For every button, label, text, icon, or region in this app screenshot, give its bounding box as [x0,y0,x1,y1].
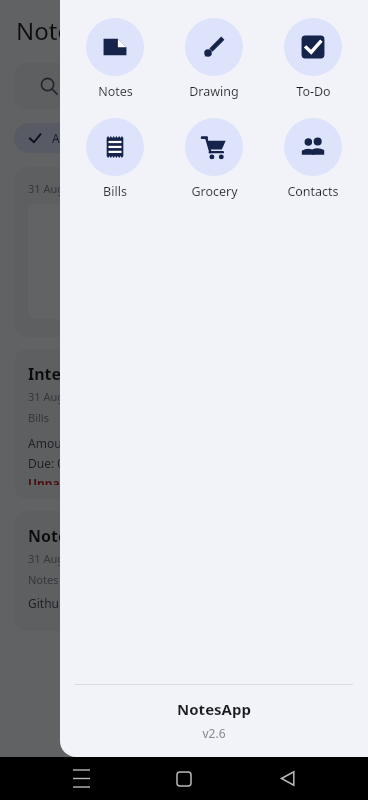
button[interactable]: Contacts [269,114,357,204]
button[interactable]: Recents [59,757,103,800]
staticText: NotesApp [60,699,368,719]
button[interactable]: 31 Aug 2024 [14,167,354,337]
button[interactable]: To-Do [269,14,357,104]
button[interactable]: Notes [71,14,159,104]
other: Bills [86,118,144,176]
other: Contacts [284,118,342,176]
button[interactable]: All [14,123,92,153]
other: Drawing [185,18,243,76]
staticText: All [52,130,66,146]
staticText: 31 Aug 2024 [28,181,93,196]
staticText: Notes [98,83,133,100]
staticText: Due: 05 Sep [28,455,95,471]
staticText: Internet Bill [28,363,125,385]
button[interactable]: Notes [100,123,178,153]
staticText: Unpaid [28,475,71,485]
staticText: v2.6 [60,725,368,741]
staticText: Bills [103,183,127,200]
staticText: Notes [122,130,156,146]
button[interactable]: Grocery [170,114,258,204]
button[interactable] [14,63,354,109]
other: Notes [86,18,144,76]
button[interactable]: Home [162,757,206,800]
button[interactable]: Notes on Compose [14,511,354,631]
button[interactable]: Internet Bill [14,349,354,499]
staticText: Notes on Compose [28,525,178,547]
other: Grocery [185,118,243,176]
staticText: 31 Aug 2024 [28,389,93,404]
button[interactable]: Bills [71,114,159,204]
button[interactable]: Back [265,757,309,800]
staticText: Notes [28,572,59,587]
staticText: Notes [16,14,83,47]
staticText: 31 Aug 2024 [28,551,93,566]
other: To-Do [284,18,342,76]
staticText: Bills [28,410,49,425]
staticText: Contacts [287,183,339,200]
button[interactable]: Drawing [170,14,258,104]
staticText: Drawing [189,83,239,100]
staticText: Amount: 450 [28,435,101,451]
staticText: Grocery [191,183,238,200]
staticText: To-Do [296,83,331,100]
staticText: Github repo link [28,595,119,611]
